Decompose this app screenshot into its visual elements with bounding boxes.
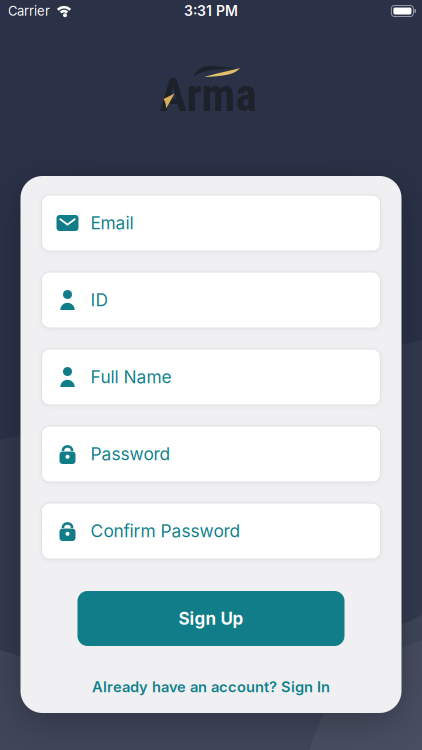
staticText: Password [90, 443, 170, 464]
button[interactable]: Email [41, 195, 380, 251]
staticText: ID [90, 289, 108, 310]
staticText: Confirm Password [90, 520, 240, 541]
button[interactable]: Full Name [41, 349, 380, 405]
button[interactable]: Sign Up [77, 591, 344, 646]
staticText: Arma [159, 69, 256, 122]
button[interactable]: Already have an account? Sign In [92, 678, 330, 696]
staticText: Carrier [8, 3, 50, 19]
button[interactable]: Confirm Password [41, 503, 380, 559]
button[interactable]: Password [41, 426, 380, 482]
staticText: 3:31 PM [184, 2, 238, 19]
staticText: Email [90, 212, 133, 233]
staticText: Sign Up [178, 608, 243, 629]
staticText: Already have an account? Sign In [92, 678, 330, 696]
button[interactable]: ID [41, 272, 380, 328]
staticText: Full Name [90, 366, 171, 387]
